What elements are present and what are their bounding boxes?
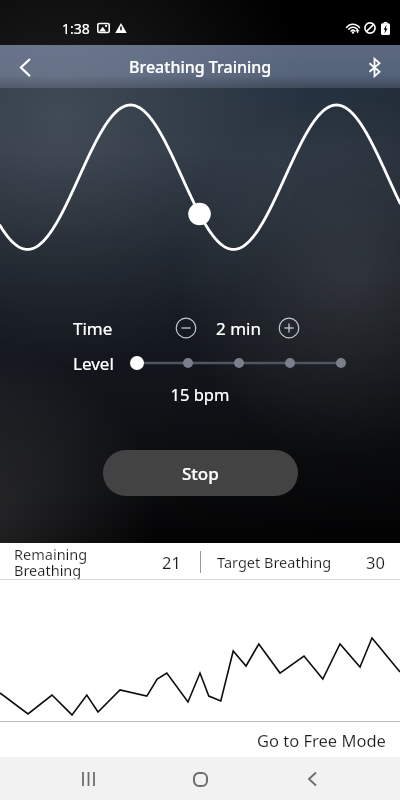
staticText: 2 min [216,317,261,340]
staticText: Target Breathing [217,552,332,572]
button[interactable]: Go to Free Mode [0,722,400,757]
staticText: Breathing Training [129,56,272,78]
staticText: 30 [366,551,385,573]
button[interactable]: Level slider [130,354,348,372]
button[interactable]: Back [5,47,45,87]
button[interactable]: Increase time [278,317,300,339]
staticText: 1:38 [62,19,90,38]
button[interactable]: Home [179,758,221,800]
staticText: 15 bpm [0,383,400,405]
staticText: 21 [162,551,181,573]
button[interactable]: Bluetooth [354,47,394,87]
staticText: Time [73,317,113,340]
staticText: Stop [182,462,219,485]
button[interactable]: Back [291,758,333,800]
button[interactable]: Stop [103,450,298,496]
staticText: Go to Free Mode [257,729,386,751]
staticText: Remaining Breathing [14,544,88,580]
staticText: Level [73,352,114,375]
button[interactable]: Recent apps [67,758,109,800]
button[interactable]: Decrease time [175,317,197,339]
